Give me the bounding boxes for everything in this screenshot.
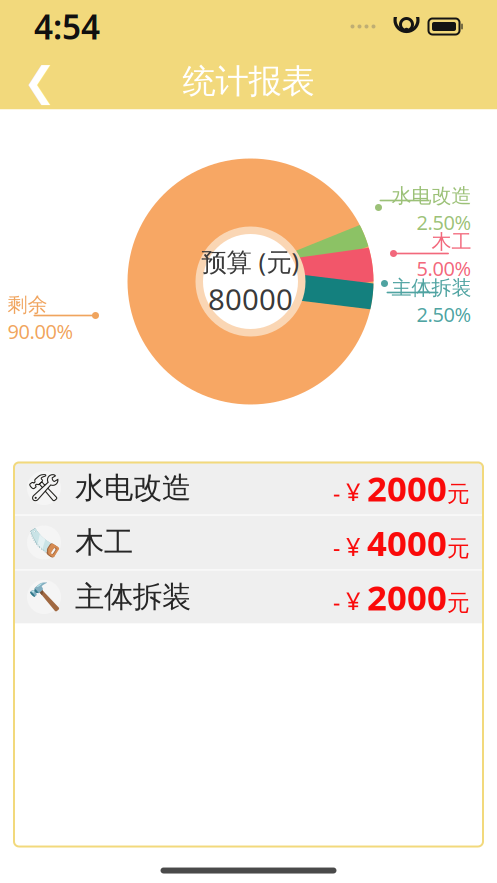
button[interactable]: Mugong 4000 yuan [13, 516, 484, 569]
staticText: 80000 [208, 279, 293, 318]
staticText: 2.50% [416, 301, 471, 328]
staticText: 🛠 [27, 473, 61, 503]
staticText: 4:54 [34, 4, 100, 49]
staticText: 2000 [367, 465, 447, 511]
staticText: 🪚 [27, 527, 60, 558]
staticText: 2.50% [416, 209, 471, 236]
staticText: 主体拆装 [75, 579, 191, 615]
button[interactable]: Back [14, 55, 66, 107]
staticText: 木工 [431, 229, 471, 254]
staticText: - [333, 478, 346, 508]
staticText: 水电改造 [75, 470, 191, 506]
staticText: 预算 (元) [201, 245, 299, 278]
staticText: 元 [447, 480, 470, 508]
staticText: 木工 [75, 524, 133, 560]
button[interactable]: Zhuti chaizhuang 2000 yuan [13, 570, 484, 623]
staticText: 主体拆装 [391, 275, 471, 300]
staticText: 元 [447, 589, 470, 617]
button[interactable]: Shuidian gaizao 2000 yuan [13, 461, 484, 514]
staticText: - [333, 532, 346, 562]
staticText: 元 [447, 534, 470, 562]
staticText: 2000 [367, 574, 447, 620]
staticText: 水电改造 [391, 183, 471, 208]
staticText: ¥ [346, 529, 367, 563]
staticText: - [333, 587, 346, 617]
staticText: 90.00% [7, 318, 73, 345]
staticText: 剩余 [7, 292, 47, 317]
staticText: ¥ [346, 475, 367, 508]
staticText: 5.00% [416, 255, 471, 282]
staticText: ¥ [346, 584, 367, 617]
staticText: 统计报表 [182, 61, 314, 102]
staticText: ❮ [23, 59, 57, 104]
staticText: 4000 [367, 519, 447, 565]
staticText: 🔨 [27, 582, 60, 612]
